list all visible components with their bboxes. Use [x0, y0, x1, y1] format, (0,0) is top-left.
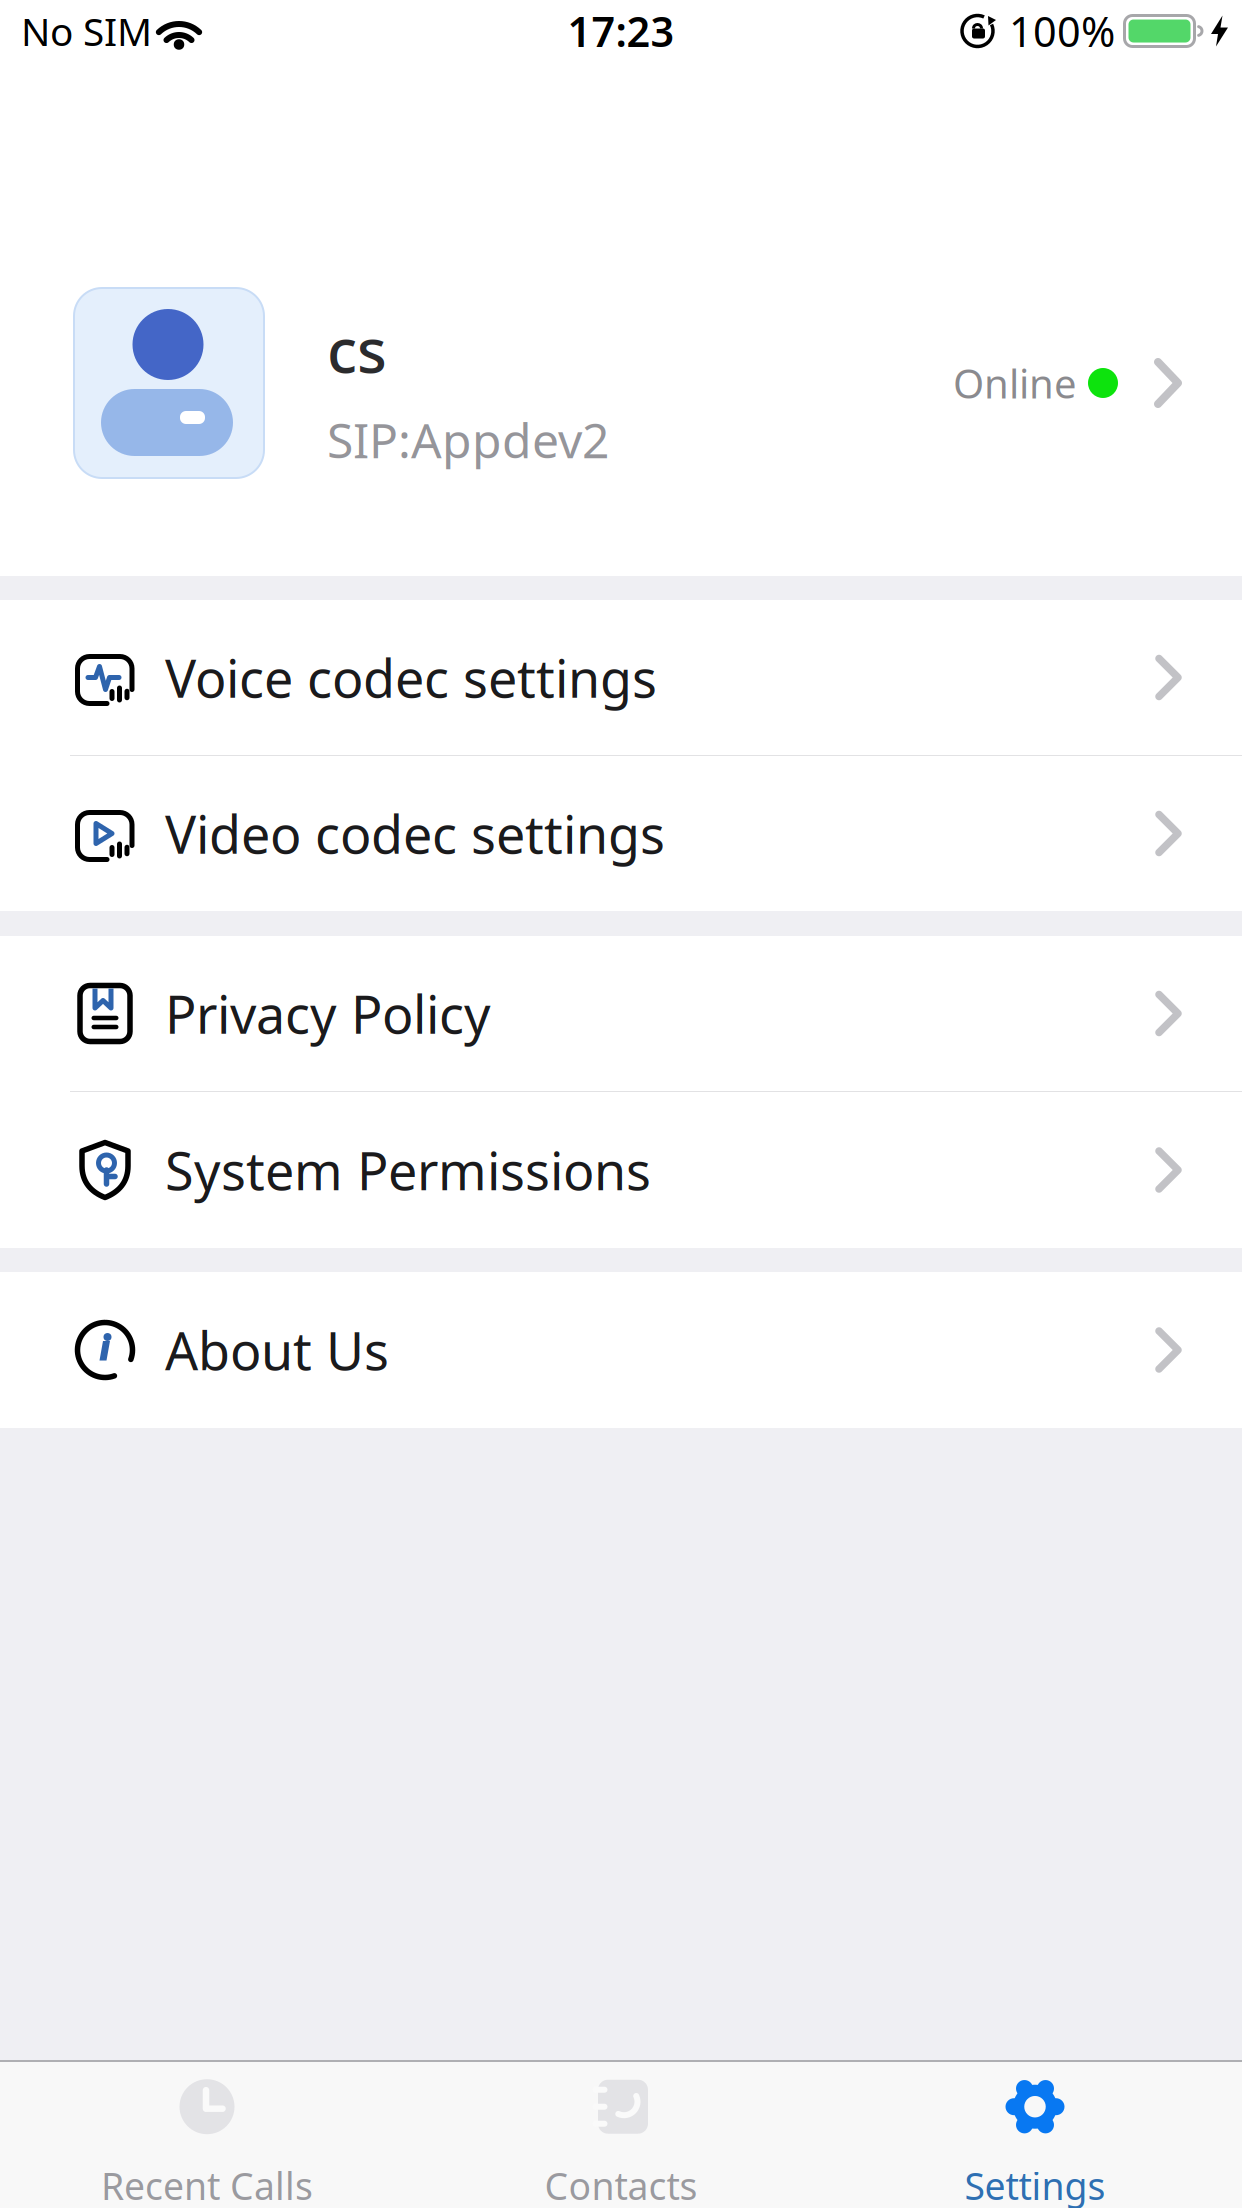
button[interactable]: System Permissions: [0, 1092, 1242, 1248]
staticText: Online: [953, 356, 1077, 409]
button[interactable]: Privacy Policy: [0, 936, 1242, 1091]
button[interactable]: Contacts: [414, 2062, 828, 2208]
staticText: System Permissions: [165, 1135, 651, 1205]
button[interactable]: Video codec settings: [0, 756, 1242, 911]
button[interactable]: Settings: [828, 2062, 1242, 2208]
staticText: No SIM: [21, 5, 152, 57]
button[interactable]: About Us: [0, 1272, 1242, 1428]
staticText: cs: [327, 308, 387, 390]
staticText: Voice codec settings: [165, 643, 657, 712]
staticText: 17:23: [567, 4, 674, 58]
staticText: Video codec settings: [165, 799, 665, 868]
staticText: 100%: [1009, 4, 1115, 58]
staticText: Contacts: [544, 2161, 697, 2208]
staticText: Settings: [964, 2161, 1105, 2208]
staticText: About Us: [165, 1315, 389, 1385]
button[interactable]: cs: [0, 288, 1242, 478]
staticText: Recent Calls: [101, 2161, 313, 2208]
button[interactable]: Recent Calls: [0, 2062, 414, 2208]
button[interactable]: Voice codec settings: [0, 600, 1242, 755]
staticText: Privacy Policy: [165, 979, 491, 1048]
staticText: SIP:Appdev2: [327, 408, 609, 472]
